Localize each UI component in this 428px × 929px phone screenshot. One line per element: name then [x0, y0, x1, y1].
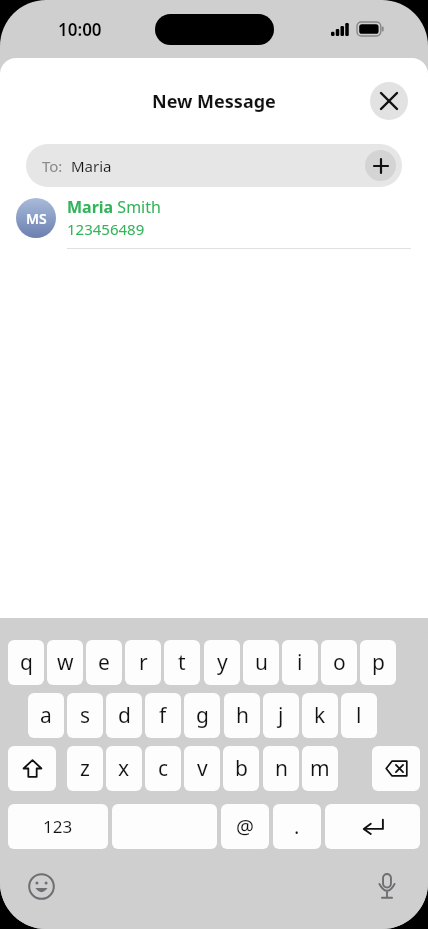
- button[interactable]: d: [106, 693, 142, 738]
- staticText: u: [255, 648, 268, 677]
- staticText: New Message: [152, 89, 276, 114]
- staticText: i: [297, 648, 303, 677]
- staticText: 123: [43, 815, 73, 838]
- button[interactable]: Return: [325, 804, 420, 849]
- button[interactable]: r: [125, 640, 161, 685]
- staticText: 10:00: [58, 18, 102, 41]
- staticText: r: [139, 648, 148, 677]
- button[interactable]: m: [302, 746, 338, 791]
- staticText: b: [235, 754, 248, 783]
- staticText: h: [236, 701, 249, 730]
- button[interactable]: To:: [26, 144, 402, 187]
- staticText: p: [372, 648, 385, 677]
- staticText: w: [57, 648, 74, 677]
- staticText: s: [80, 701, 91, 730]
- staticText: @: [236, 813, 254, 840]
- button[interactable]: MS: [0, 196, 428, 249]
- staticText: t: [178, 648, 186, 677]
- staticText: l: [356, 701, 362, 730]
- button[interactable]: h: [224, 693, 260, 738]
- button[interactable]: Emoji: [26, 871, 56, 901]
- staticText: e: [98, 648, 110, 677]
- staticText: x: [118, 754, 130, 783]
- staticText: To:: [42, 156, 63, 176]
- staticText: f: [159, 701, 167, 730]
- button[interactable]: l: [341, 693, 377, 738]
- staticText: Maria: [71, 156, 112, 176]
- button[interactable]: Backspace: [372, 746, 420, 791]
- staticText: y: [217, 648, 228, 677]
- button[interactable]: Dictation: [372, 871, 402, 901]
- button[interactable]: c: [145, 746, 181, 791]
- staticText: Maria Smith: [67, 196, 161, 218]
- button[interactable]: Add contact: [365, 150, 396, 181]
- staticText: m: [310, 754, 330, 783]
- staticText: z: [80, 754, 90, 783]
- button[interactable]: Shift: [8, 746, 56, 791]
- button[interactable]: p: [360, 640, 396, 685]
- staticText: a: [40, 701, 52, 730]
- button[interactable]: Close: [370, 82, 408, 120]
- staticText: d: [118, 701, 131, 730]
- button[interactable]: u: [243, 640, 279, 685]
- button[interactable]: i: [282, 640, 318, 685]
- button[interactable]: z: [67, 746, 103, 791]
- button[interactable]: a: [28, 693, 64, 738]
- staticText: q: [20, 648, 33, 677]
- button[interactable]: j: [263, 693, 299, 738]
- button[interactable]: f: [145, 693, 181, 738]
- button[interactable]: .: [273, 804, 321, 849]
- button[interactable]: n: [263, 746, 299, 791]
- staticText: k: [314, 701, 326, 730]
- button[interactable]: Space: [112, 804, 217, 849]
- button[interactable]: t: [164, 640, 200, 685]
- staticText: MS: [26, 209, 47, 228]
- staticText: c: [158, 754, 169, 783]
- staticText: 123456489: [67, 219, 145, 239]
- button[interactable]: y: [204, 640, 240, 685]
- button[interactable]: s: [67, 693, 103, 738]
- button[interactable]: b: [223, 746, 259, 791]
- staticText: o: [333, 648, 346, 677]
- button[interactable]: 123: [8, 804, 108, 849]
- staticText: g: [196, 701, 209, 730]
- button[interactable]: o: [321, 640, 357, 685]
- staticText: n: [275, 754, 288, 783]
- button[interactable]: q: [8, 640, 44, 685]
- button[interactable]: e: [86, 640, 122, 685]
- button[interactable]: w: [47, 640, 83, 685]
- button[interactable]: k: [302, 693, 338, 738]
- button[interactable]: g: [184, 693, 220, 738]
- button[interactable]: x: [106, 746, 142, 791]
- button[interactable]: @: [221, 804, 269, 849]
- staticText: v: [197, 754, 208, 783]
- button[interactable]: v: [184, 746, 220, 791]
- staticText: j: [278, 701, 284, 730]
- staticText: .: [294, 813, 300, 840]
